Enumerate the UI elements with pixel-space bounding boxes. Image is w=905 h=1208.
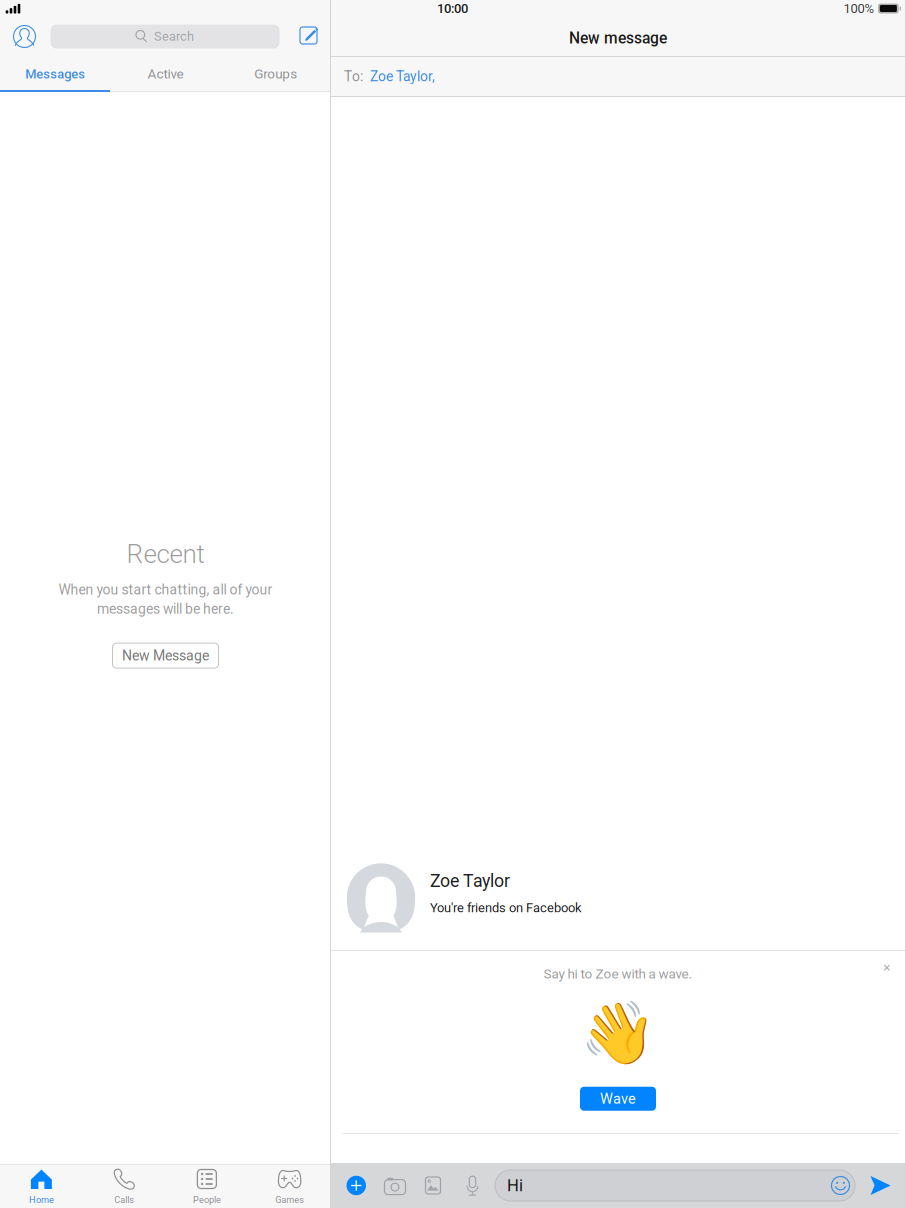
staticText: People [193, 1194, 221, 1205]
staticText: Messages [25, 66, 85, 81]
button[interactable]: Home [0, 1165, 83, 1208]
button[interactable]: Camera [384, 1172, 406, 1198]
button[interactable]: Stickers [831, 1176, 850, 1195]
button[interactable]: Voice message [465, 1172, 480, 1198]
staticText: New message [569, 29, 667, 47]
staticText: Calls [114, 1194, 134, 1205]
staticText: 100% [844, 1, 875, 16]
staticText: Zoe Taylor [430, 870, 510, 891]
staticText: Search [154, 29, 194, 44]
button[interactable]: Active [110, 56, 221, 92]
staticText: 👋 [580, 997, 656, 1069]
button[interactable]: Profile [13, 24, 35, 48]
button[interactable]: Messages [0, 56, 110, 92]
button[interactable]: Send [870, 1172, 891, 1198]
staticText: To: [344, 68, 363, 85]
staticText: Groups [254, 66, 297, 82]
staticText: ✕ [882, 962, 891, 974]
button[interactable]: People [165, 1165, 248, 1208]
button[interactable]: Zoe Taylor, [370, 68, 435, 85]
staticText: Hi [507, 1176, 523, 1195]
button[interactable]: Wave [580, 1087, 656, 1111]
button[interactable]: Dismiss [875, 956, 899, 980]
staticText: 10:00 [437, 1, 468, 16]
button[interactable]: Games [248, 1165, 331, 1208]
staticText: Zoe Taylor, [370, 68, 435, 85]
button[interactable]: Groups [221, 56, 331, 92]
staticText: Say hi to Zoe with a wave. [543, 966, 692, 982]
button[interactable]: More options [346, 1172, 366, 1198]
staticText: Recent [126, 539, 204, 569]
staticText: Active [147, 66, 183, 82]
button[interactable]: New Message [112, 643, 218, 668]
staticText: Home [29, 1194, 54, 1205]
staticText: Games [275, 1194, 304, 1205]
button[interactable]: New message [300, 26, 320, 47]
staticText: messages will be here. [97, 601, 234, 617]
staticText: Wave [600, 1090, 636, 1107]
button[interactable]: Photos [425, 1172, 441, 1198]
staticText: When you start chatting, all of your [58, 581, 272, 598]
staticText: You're friends on Facebook [430, 900, 582, 915]
button[interactable]: Calls [83, 1165, 166, 1208]
staticText: New Message [122, 647, 209, 664]
